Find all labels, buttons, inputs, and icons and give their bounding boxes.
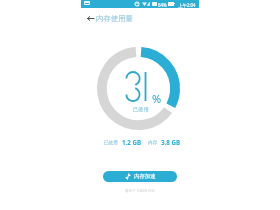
staticText: 释放了 0.00 B 内存 xyxy=(81,188,199,193)
staticText: % xyxy=(152,91,162,106)
staticText: 内存 xyxy=(148,140,158,146)
staticText: 内存加速 xyxy=(134,173,156,180)
staticText: 64% xyxy=(158,2,167,8)
staticText: 1.2 GB xyxy=(122,138,142,146)
staticText: 3.8 GB xyxy=(161,138,181,146)
button[interactable]: Back xyxy=(82,10,98,26)
staticText: 内存使用量 xyxy=(96,14,133,23)
button[interactable]: 内存加速 xyxy=(103,171,177,182)
staticText: 已使用 xyxy=(133,106,149,113)
staticText: 已使用 xyxy=(104,140,118,146)
staticText: 上午2:04 xyxy=(178,2,196,8)
